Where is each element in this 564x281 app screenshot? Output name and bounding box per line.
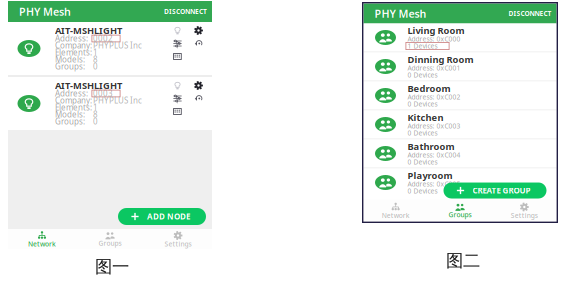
button[interactable]: Network <box>8 229 76 249</box>
button[interactable]: Settings <box>492 199 556 221</box>
staticText: Company: <box>55 40 92 51</box>
button[interactable]: Settings <box>144 229 212 249</box>
staticText: PHYPLUS Inc <box>93 95 142 106</box>
staticText: ADD NODE <box>147 211 190 222</box>
staticText: 图二 <box>446 250 480 271</box>
staticText: 0002 <box>93 33 113 44</box>
staticText: Bathroom <box>407 140 454 153</box>
staticText: Elements: <box>55 47 92 58</box>
staticText: Models: <box>55 54 85 65</box>
staticText: DISCONNECT <box>164 7 207 16</box>
staticText: PHYPLUS Inc <box>93 40 142 51</box>
staticText: Groups <box>448 210 471 219</box>
staticText: DISCONNECT <box>508 9 551 18</box>
staticText: AIT-MSHLIGHT <box>55 24 122 37</box>
staticText: 0 Devices <box>407 71 437 79</box>
staticText: Groups: <box>55 61 85 72</box>
staticText: Groups: <box>55 116 85 127</box>
staticText: Dinning Room <box>407 53 473 66</box>
button[interactable]: ADD NODE <box>118 208 206 225</box>
button[interactable]: Bathroom <box>363 139 556 167</box>
staticText: Playroom <box>407 169 452 182</box>
staticText: 1 <box>93 47 98 58</box>
button[interactable]: DISCONNECT <box>164 4 207 19</box>
staticText: Settings <box>511 211 538 220</box>
staticText: Address: <box>55 88 88 99</box>
staticText: 0 Devices <box>407 158 437 166</box>
staticText: 8 <box>93 109 98 120</box>
staticText: 1 <box>93 102 98 113</box>
staticText: Address: 0xC004 <box>407 151 460 159</box>
staticText: Kitchen <box>407 111 443 124</box>
staticText: Bedroom <box>407 82 450 95</box>
button[interactable]: AIT-MSHLIGHT <box>8 22 212 75</box>
staticText: Elements: <box>55 102 92 113</box>
button[interactable]: AIT-MSHLIGHT <box>8 77 212 130</box>
staticText: Address: 0xC000 <box>407 35 460 43</box>
staticText: 8 <box>93 54 98 65</box>
staticText: PHY Mesh <box>374 6 426 21</box>
button[interactable]: DISCONNECT <box>508 6 551 21</box>
staticText: Settings <box>164 240 191 248</box>
button[interactable]: CREATE GROUP <box>443 182 546 198</box>
button[interactable]: Network <box>363 199 428 221</box>
button[interactable]: Dinning Room <box>363 52 556 80</box>
staticText: 0 <box>93 116 98 127</box>
staticText: Address: 0xC001 <box>407 64 460 72</box>
staticText: Groups <box>98 239 121 248</box>
staticText: 0 <box>93 61 98 72</box>
staticText: Address: 0xC003 <box>407 122 460 130</box>
staticText: Models: <box>55 109 85 120</box>
staticText: PHY Mesh <box>19 4 71 19</box>
staticText: Address: <box>55 33 88 44</box>
staticText: CREATE GROUP <box>472 185 530 196</box>
staticText: 0 Devices <box>407 100 437 108</box>
staticText: 图一 <box>95 256 129 277</box>
staticText: 0 Devices <box>407 129 437 137</box>
button[interactable]: Kitchen <box>363 110 556 138</box>
button[interactable]: Bedroom <box>363 81 556 109</box>
button[interactable]: Playroom <box>363 168 556 196</box>
staticText: Address: 0xC002 <box>407 93 460 101</box>
button[interactable]: Groups <box>428 199 492 221</box>
staticText: Company: <box>55 95 92 106</box>
staticText: Living Room <box>407 24 464 37</box>
staticText: Address: 0xC005 <box>407 180 460 188</box>
button[interactable]: Groups <box>76 229 144 249</box>
staticText: Network <box>382 211 410 220</box>
staticText: 1 Devices <box>407 42 437 50</box>
staticText: Network <box>28 240 56 248</box>
staticText: 0003 <box>93 88 113 99</box>
staticText: AIT-MSHLIGHT <box>55 79 122 92</box>
button[interactable]: Living Room <box>363 23 556 51</box>
staticText: 0 Devices <box>407 187 437 195</box>
